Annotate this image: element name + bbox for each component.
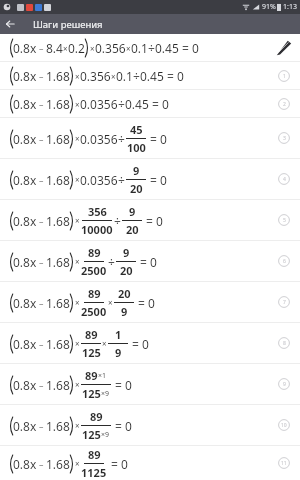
staticText: 8 [283,340,286,347]
staticText: = 0 [129,336,149,352]
button[interactable]: 0.8x [0,323,300,364]
button[interactable]: 0.8x [0,34,300,62]
button[interactable]: 0.8x [0,159,300,200]
staticText: 1 [283,73,286,80]
staticText: − [37,380,46,391]
button[interactable]: 0.8x [0,118,300,159]
staticText: × [75,71,80,82]
staticText: 0.8x [13,172,37,188]
staticText: = 0 [112,418,132,434]
staticText: 89 [88,245,101,260]
staticText: − [37,134,46,145]
staticText: 1.68 [46,418,70,434]
other: Step 1 info [272,64,296,88]
staticText: × [75,215,80,226]
staticText: 0.8x [13,213,37,229]
staticText: 0.8x [13,254,37,270]
staticText: 125 [82,427,101,442]
staticText: = 0 [137,254,157,270]
staticText: 0.8x [13,377,37,393]
staticText: ÷ [118,172,125,188]
staticText: × [108,297,113,308]
button[interactable]: 0.8x [0,241,300,282]
staticText: 5 [283,217,286,224]
staticText: = 0 [179,40,199,56]
button[interactable]: 0.8x [0,62,300,90]
button[interactable]: Back [0,14,20,34]
button[interactable]: 0.8x [0,364,300,405]
staticText: 0.45 [155,40,179,56]
staticText: 20 [120,263,133,278]
staticText: 2 [283,101,286,108]
staticText: × [90,43,95,54]
staticText: 1125 [81,465,107,480]
staticText: × [102,338,107,349]
staticText: ÷ [108,254,115,270]
staticText: 2500 [81,304,107,319]
staticText: 4 [283,176,286,183]
button[interactable]: 0.8x [0,282,300,323]
staticText: 2500 [81,263,107,278]
staticText: = 0 [135,295,155,311]
staticText: 0.8x [13,418,37,434]
staticText: − [37,339,46,350]
staticText: 8.4 [46,40,63,56]
staticText: 0.45 [125,96,149,112]
staticText: 1 [115,327,122,342]
staticText: 1.68 [46,377,70,393]
staticText: 9 [283,381,286,388]
staticText: × [63,43,68,54]
staticText: × [75,256,80,267]
button[interactable]: 0.8x [0,405,300,446]
staticText: 0.8x [13,336,37,352]
staticText: − [37,99,46,110]
other: Step 11 info [272,451,296,475]
staticText: − [37,298,46,309]
staticText: × [75,99,80,110]
staticText: × [111,71,116,82]
other: Step 8 info [272,331,296,355]
staticText: × [75,458,80,469]
staticText: 125 [82,386,101,401]
staticText: 10 [281,422,287,429]
staticText: 91% [262,2,276,12]
staticText: 0.8x [13,456,37,472]
staticText: 89 [88,286,101,301]
staticText: = 0 [108,456,128,472]
staticText: ÷ [133,68,140,84]
staticText: 9 [129,204,136,219]
staticText: − [37,421,46,432]
button[interactable]: 0.8x [0,200,300,241]
staticText: 1.68 [46,131,70,147]
staticText: ×9 [101,389,110,399]
staticText: 0.0356 [80,131,118,147]
staticText: 20 [118,286,131,301]
staticText: 0.0356 [80,96,118,112]
other: Step 3 info [272,126,296,150]
staticText: 356 [88,204,107,219]
staticText: = 0 [149,96,169,112]
staticText: = 0 [112,377,132,393]
staticText: ×9 [101,430,110,440]
staticText: × [126,43,131,54]
staticText: 89 [88,447,101,462]
staticText: 89 [90,409,103,424]
staticText: − [37,459,46,470]
button[interactable]: 0.8x [0,90,300,118]
staticText: 7 [283,299,286,306]
staticText: 20 [130,181,143,196]
staticText: × [75,174,80,185]
staticText: 0.356 [95,40,126,56]
button[interactable]: 0.8x [0,446,300,480]
staticText: 1.68 [46,336,70,352]
staticText: 9 [133,163,140,178]
staticText: ÷ [118,131,125,147]
staticText: = 0 [147,172,167,188]
staticText: 6 [283,258,286,265]
staticText: 3 [283,135,286,142]
staticText: 1:13 [283,2,297,12]
staticText: 9 [121,304,128,319]
staticText: 1.68 [46,295,70,311]
staticText: = 0 [143,213,163,229]
staticText: × [75,379,80,390]
